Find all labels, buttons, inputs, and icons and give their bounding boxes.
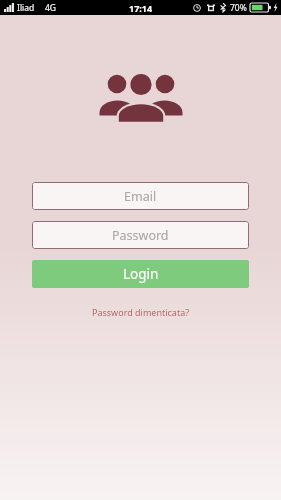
button[interactable]: Password dimenticata? bbox=[86, 303, 196, 321]
staticText: Password bbox=[112, 227, 169, 244]
staticText: Password dimenticata? bbox=[92, 306, 190, 318]
staticText: Email bbox=[124, 188, 157, 205]
button[interactable]: Password bbox=[32, 221, 249, 249]
staticText: Login bbox=[123, 265, 159, 283]
staticText: 70% bbox=[230, 2, 247, 14]
other: App logo bbox=[99, 74, 183, 122]
button[interactable]: Login bbox=[32, 260, 249, 288]
staticText: Iliad bbox=[17, 2, 35, 14]
staticText: 17:14 bbox=[129, 2, 153, 14]
button[interactable]: Email bbox=[32, 182, 249, 210]
staticText: 4G bbox=[45, 2, 57, 14]
